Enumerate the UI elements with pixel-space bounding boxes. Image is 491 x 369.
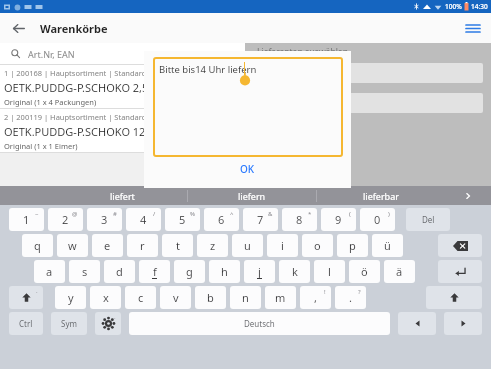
button[interactable]: 8	[282, 208, 317, 231]
button[interactable]: More suggestions	[445, 186, 491, 205]
staticText: j	[258, 264, 261, 279]
button[interactable]: 7	[243, 208, 278, 231]
button[interactable]: z	[197, 234, 228, 257]
staticText: w	[68, 238, 77, 253]
staticText: Original (1 x 1 Eimer)	[4, 141, 78, 151]
button[interactable]: 1 | 200168 | Hauptsortiment | Standardso…	[0, 65, 245, 108]
button[interactable]: o	[302, 234, 333, 257]
staticText: q	[34, 238, 41, 253]
button[interactable]: m	[265, 286, 296, 309]
button[interactable]: Del	[406, 208, 450, 231]
staticText: ö	[361, 264, 368, 279]
staticText: ·	[36, 288, 38, 296]
button[interactable]: y	[55, 286, 86, 309]
button[interactable]: k	[279, 260, 310, 283]
button[interactable]: 0	[360, 208, 395, 231]
staticText: 5	[179, 212, 186, 227]
button[interactable]: f	[139, 260, 170, 283]
staticText: 3	[101, 212, 108, 227]
button[interactable]: .	[335, 286, 366, 309]
button[interactable]: 9	[321, 208, 356, 231]
button[interactable]: 6	[204, 208, 239, 231]
button[interactable]: Menu	[462, 17, 484, 39]
staticText: s	[82, 264, 88, 279]
button[interactable]: Art.Nr, EAN	[0, 43, 245, 64]
button[interactable]: Shift	[426, 286, 482, 309]
button[interactable]: lieferbar	[317, 186, 445, 205]
button[interactable]: g	[174, 260, 205, 283]
staticText: liefert	[110, 190, 135, 202]
button[interactable]: OK	[226, 158, 269, 180]
button[interactable]: 5	[165, 208, 200, 231]
button[interactable]: v	[160, 286, 191, 309]
button[interactable]: b	[195, 286, 226, 309]
button[interactable]: 3	[87, 208, 122, 231]
staticText: l	[328, 264, 331, 279]
button[interactable]: Settings	[95, 312, 121, 335]
button[interactable]: p	[337, 234, 368, 257]
staticText: c	[138, 290, 144, 305]
button[interactable]: liefert	[58, 186, 187, 205]
staticText: *	[308, 210, 312, 218]
button[interactable]: Bitte bis14 Uhr liefern	[153, 57, 343, 157]
button[interactable]: Sym	[51, 312, 87, 335]
button[interactable]: ünf 1234567890)	[253, 93, 483, 113]
button[interactable]: ,	[300, 286, 331, 309]
staticText: 8	[296, 212, 303, 227]
button[interactable]: Left	[398, 312, 436, 335]
staticText: b	[207, 290, 214, 305]
staticText: 0	[374, 212, 381, 227]
button[interactable]: ä	[384, 260, 415, 283]
staticText: 1	[23, 212, 30, 227]
button[interactable]: t	[162, 234, 193, 257]
staticText: (	[349, 210, 351, 218]
button[interactable]: Back	[7, 17, 29, 39]
staticText: 2	[62, 212, 69, 227]
button[interactable]: s	[69, 260, 100, 283]
button[interactable]: n	[230, 286, 261, 309]
button[interactable]: ö	[349, 260, 380, 283]
staticText: .	[349, 290, 352, 305]
button[interactable]: u	[232, 234, 263, 257]
button[interactable]: i	[267, 234, 298, 257]
button[interactable]: 1	[9, 208, 44, 231]
button[interactable]: 4	[126, 208, 161, 231]
staticText: Ihr Lieblingslieferant	[263, 67, 351, 79]
staticText: lieferbar	[363, 190, 399, 202]
staticText: y	[68, 290, 74, 305]
staticText: d	[116, 264, 123, 279]
button[interactable]: 2 | 200119 | Hauptsortiment | Standardso…	[0, 109, 245, 152]
button[interactable]: w	[57, 234, 88, 257]
staticText: )	[388, 210, 390, 218]
button[interactable]: Shift	[9, 286, 43, 309]
button[interactable]: ü	[372, 234, 403, 257]
button[interactable]: l	[314, 260, 345, 283]
button[interactable]: h	[209, 260, 240, 283]
button[interactable]: x	[90, 286, 121, 309]
button[interactable]: c	[125, 286, 156, 309]
staticText: 100%	[445, 2, 462, 11]
staticText: Art.Nr, EAN	[28, 48, 75, 60]
button[interactable]: Right	[444, 312, 482, 335]
staticText: Bitte bis14 Uhr liefern	[159, 63, 257, 76]
button[interactable]: Backspace	[438, 234, 482, 257]
button[interactable]: q	[22, 234, 53, 257]
button[interactable]: Enter	[438, 260, 482, 283]
staticText: @	[72, 210, 78, 218]
staticText: 4	[140, 212, 147, 227]
button[interactable]: a	[34, 260, 65, 283]
button[interactable]: j	[244, 260, 275, 283]
button[interactable]: Ctrl	[9, 312, 43, 335]
staticText: OETK.PUDDG-P.SCHOKO 2,5KG	[4, 80, 163, 95]
button[interactable]: Ihr Lieblingslieferant	[253, 63, 483, 83]
button[interactable]: d	[104, 260, 135, 283]
button[interactable]: r	[127, 234, 158, 257]
button[interactable]: e	[92, 234, 123, 257]
staticText: /	[153, 210, 156, 218]
staticText: OETK.PUDDG-P.SCHOKO 12,5K	[4, 124, 162, 139]
button[interactable]: liefern	[188, 186, 316, 205]
staticText: ·	[114, 314, 116, 322]
button[interactable]: 2	[48, 208, 83, 231]
button[interactable]: Deutsch	[129, 312, 390, 335]
